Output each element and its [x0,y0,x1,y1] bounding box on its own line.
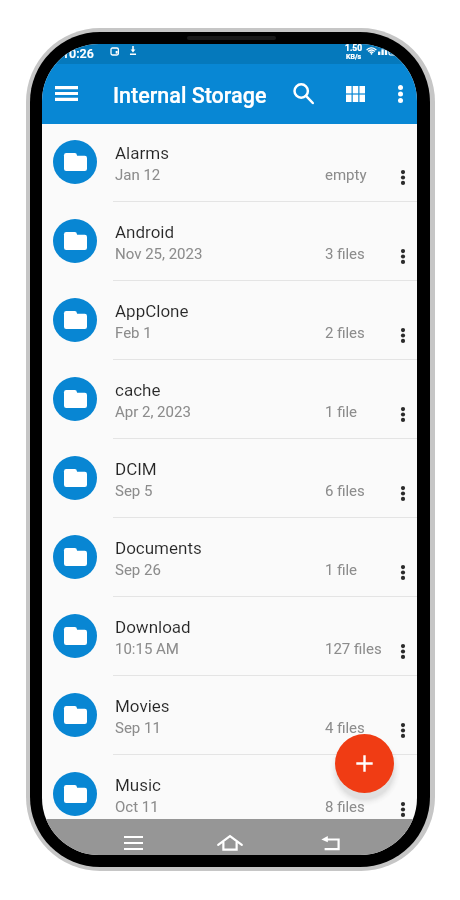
staticText: Documents [115,538,202,558]
button[interactable]: More options [378,72,417,116]
staticText: Sep 5 [115,482,153,500]
button[interactable]: DCIM [42,439,417,518]
staticText: 127 files [325,640,382,658]
button[interactable]: Item options [381,551,417,595]
button[interactable]: Switch to grid view [333,72,377,116]
button[interactable]: Add [335,734,394,793]
staticText: Sep 11 [115,719,161,737]
staticText: AppClone [115,301,189,321]
staticText: Movies [115,696,170,716]
staticText: Internal Storage [113,83,267,108]
staticText: 2 files [325,324,365,342]
staticText: 4 files [325,719,365,737]
staticText: 8 files [325,798,365,816]
staticText: 10:26 [62,46,94,61]
staticText: Oct 11 [115,798,159,816]
button[interactable]: Item options [381,314,417,358]
button[interactable]: Download [42,597,417,676]
button[interactable]: Search [282,72,326,116]
button[interactable]: Item options [381,393,417,437]
staticText: 6 files [325,482,365,500]
button[interactable]: Music [42,755,417,834]
button[interactable]: Movies [42,676,417,755]
button[interactable]: Back [309,828,353,855]
button[interactable]: cache [42,360,417,439]
button[interactable]: Recent apps [111,828,155,855]
button[interactable]: Home [208,828,252,855]
staticText: Apr 2, 2023 [115,403,191,421]
staticText: Sep 26 [115,561,161,579]
staticText: 3 files [325,245,365,263]
staticText: empty [325,166,367,184]
button[interactable]: Open navigation menu [44,71,88,115]
button[interactable]: Item options [381,630,417,674]
staticText: 1 file [325,403,358,421]
staticText: Feb 1 [115,324,152,342]
button[interactable]: Item options [381,156,417,200]
staticText: Download [115,617,191,637]
button[interactable]: Item options [381,788,417,832]
staticText: 1 file [325,561,358,579]
staticText: cache [115,380,161,400]
staticText: Music [115,775,162,795]
staticText: 10:15 AM [115,640,179,658]
button[interactable]: Alarms [42,123,417,202]
button[interactable]: AppClone [42,281,417,360]
button[interactable]: Item options [381,709,417,753]
staticText: Android [115,222,175,242]
staticText: DCIM [115,459,157,479]
button[interactable]: Item options [381,235,417,279]
staticText: 1.50 [345,44,363,53]
staticText: Nov 25, 2023 [115,245,203,263]
button[interactable]: Android [42,202,417,281]
staticText: KB/s [346,53,362,61]
staticText: Alarms [115,143,169,163]
staticText: Jan 12 [115,166,161,184]
button[interactable]: Documents [42,518,417,597]
button[interactable]: Item options [381,472,417,516]
